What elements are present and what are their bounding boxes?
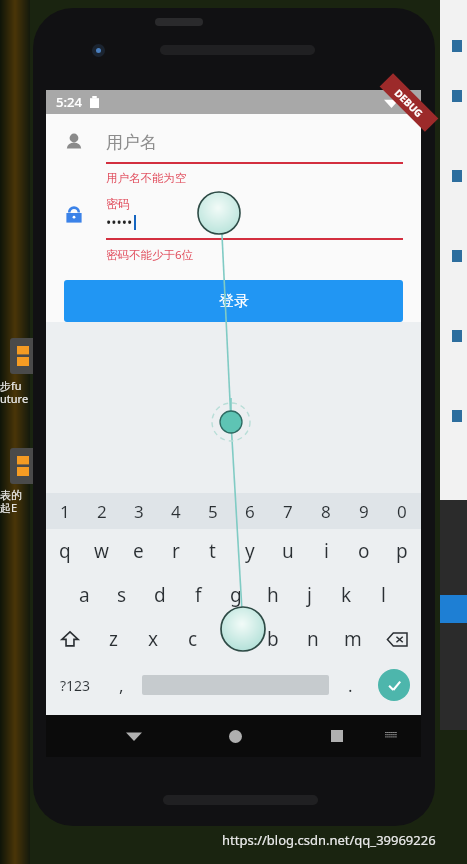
button[interactable]: j <box>291 573 328 617</box>
button[interactable]: a <box>65 573 103 617</box>
staticText: 7 <box>283 500 293 523</box>
button[interactable]: Switch keyboard <box>375 719 409 753</box>
staticText: 密码 <box>106 196 130 211</box>
staticText: 5 <box>208 500 218 523</box>
button[interactable]: w <box>83 529 120 573</box>
button[interactable]: Recents <box>317 716 357 756</box>
staticText: 表的 起E <box>0 488 22 515</box>
staticText: 1 <box>60 500 70 523</box>
button[interactable]: u <box>269 529 307 573</box>
staticText: h <box>267 582 279 608</box>
staticText: 步fu uture <box>0 378 29 406</box>
button[interactable]: 3 <box>120 493 157 529</box>
staticText: e <box>133 538 144 564</box>
button[interactable]: . <box>333 661 367 709</box>
staticText: d <box>154 582 166 608</box>
button[interactable]: 9 <box>345 493 383 529</box>
button[interactable]: m <box>333 617 373 661</box>
button[interactable]: Back <box>114 716 154 756</box>
staticText: . <box>348 674 353 697</box>
button[interactable]: h <box>254 573 291 617</box>
staticText: 9 <box>359 500 369 523</box>
button[interactable]: q <box>46 529 83 573</box>
staticText: c <box>188 626 198 652</box>
button[interactable]: 7 <box>269 493 307 529</box>
staticText: 密码不能少于6位 <box>106 247 194 263</box>
staticText: 2 <box>97 500 107 523</box>
staticText: j <box>307 582 312 608</box>
button[interactable]: s <box>103 573 141 617</box>
button[interactable]: Home <box>215 716 255 756</box>
staticText: ?123 <box>60 676 91 695</box>
staticText: p <box>396 538 408 564</box>
button[interactable]: k <box>328 573 365 617</box>
staticText: 登录 <box>219 292 249 311</box>
staticText: https://blog.csdn.net/qq_39969226 <box>222 831 436 849</box>
button[interactable]: 用户名 <box>64 122 403 162</box>
button[interactable]: t <box>194 529 231 573</box>
staticText: z <box>109 626 118 652</box>
staticText: o <box>358 538 370 564</box>
staticText: w <box>94 538 109 564</box>
button[interactable]: 8 <box>307 493 345 529</box>
staticText: b <box>267 626 279 652</box>
button[interactable]: , <box>104 661 138 709</box>
staticText: , <box>119 674 124 697</box>
button[interactable]: 5 <box>194 493 231 529</box>
staticText: x <box>148 626 159 652</box>
button[interactable]: Enter <box>367 661 421 709</box>
button[interactable]: b <box>253 617 293 661</box>
button[interactable]: 0 <box>383 493 421 529</box>
staticText: 6 <box>245 500 255 523</box>
staticText: s <box>117 582 127 608</box>
button[interactable]: e <box>120 529 157 573</box>
staticText: 3 <box>134 500 144 523</box>
staticText: g <box>230 582 242 608</box>
button[interactable]: 1 <box>46 493 83 529</box>
staticText: 用户名 <box>106 132 157 153</box>
button[interactable]: g <box>217 573 254 617</box>
button[interactable]: 4 <box>157 493 194 529</box>
button[interactable]: 6 <box>231 493 269 529</box>
staticText: k <box>341 582 352 608</box>
staticText: 用户名不能为空 <box>106 171 187 185</box>
staticText: i <box>324 538 329 564</box>
button[interactable]: ?123 <box>46 661 104 709</box>
button[interactable]: o <box>345 529 383 573</box>
button[interactable]: z <box>93 617 133 661</box>
staticText: m <box>344 626 362 652</box>
staticText: 8 <box>321 500 331 523</box>
staticText: r <box>172 538 180 564</box>
button[interactable]: n <box>293 617 333 661</box>
staticText: l <box>381 582 386 608</box>
button[interactable]: l <box>365 573 402 617</box>
staticText: q <box>59 538 71 564</box>
button[interactable]: 密码 <box>64 196 403 232</box>
staticText: n <box>307 626 319 652</box>
button[interactable]: Backspace <box>373 617 421 661</box>
button[interactable]: v <box>213 617 253 661</box>
button[interactable]: y <box>231 529 269 573</box>
staticText: t <box>209 538 216 564</box>
staticText: 5:24 <box>56 93 82 111</box>
staticText: y <box>245 538 255 564</box>
button[interactable]: x <box>133 617 173 661</box>
staticText: ••••• <box>106 213 133 232</box>
button[interactable]: c <box>173 617 213 661</box>
staticText: 0 <box>397 500 407 523</box>
button[interactable]: f <box>179 573 217 617</box>
button[interactable]: p <box>383 529 421 573</box>
button[interactable]: r <box>157 529 194 573</box>
staticText: f <box>195 582 202 608</box>
staticText: v <box>228 626 238 652</box>
staticText: DEBUG <box>392 86 426 120</box>
staticText: 4 <box>171 500 181 523</box>
staticText: u <box>282 538 294 564</box>
button[interactable]: 登录 <box>64 280 403 322</box>
button[interactable]: Shift <box>46 617 93 661</box>
button[interactable]: i <box>307 529 345 573</box>
button[interactable]: d <box>141 573 179 617</box>
staticText: a <box>79 582 90 608</box>
button[interactable]: 2 <box>83 493 120 529</box>
